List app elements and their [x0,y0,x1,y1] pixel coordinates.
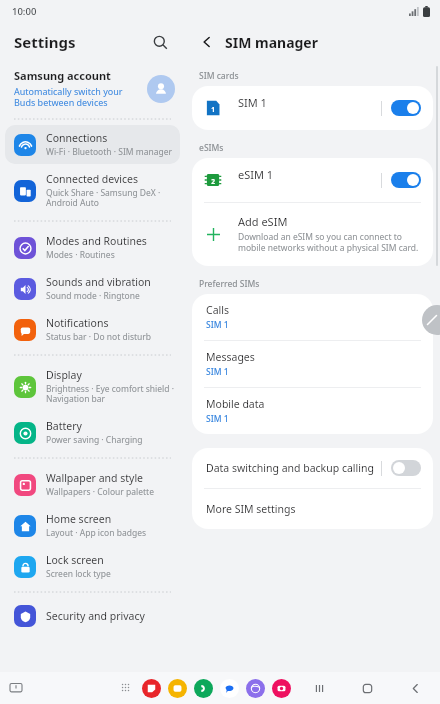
button[interactable]: Mobile data [192,388,433,434]
button[interactable]: Display [5,362,180,411]
button[interactable]: Notifications [5,310,180,349]
button[interactable]: Add eSIM [192,203,433,266]
staticText: Notifications [46,316,109,330]
button[interactable]: Search [147,29,173,55]
staticText: SIM manager [225,33,318,52]
staticText: 2 [211,177,215,186]
staticText: Modes · Routines [46,249,115,261]
staticText: Brightness · Eye comfort shield · Naviga… [46,383,174,405]
staticText: Mobile data [206,397,265,411]
button[interactable]: Modes and Routines [5,228,180,267]
staticText: Battery [46,419,82,433]
staticText: eSIMs [199,142,224,154]
staticText: SIM cards [199,70,239,82]
button[interactable]: Recents [308,677,330,699]
button[interactable]: Sounds and vibration [5,269,180,308]
button[interactable]: App 2 [194,679,213,698]
button[interactable]: Connections [5,125,180,164]
button[interactable]: Samsung account [0,62,185,115]
button[interactable]: Data switching and backup calling [192,448,433,488]
button[interactable]: Wallpaper and style [5,465,180,504]
button[interactable]: All apps [119,681,135,697]
staticText: Messages [206,350,255,364]
staticText: SIM 1 [238,95,381,110]
staticText: eSIM 1 [238,167,381,182]
staticText: Security and privacy [46,609,145,623]
button[interactable]: More SIM settings [192,489,433,529]
staticText: Preferred SIMs [199,278,260,290]
staticText: Samsung account [14,68,111,83]
staticText: Layout · App icon badges [46,527,147,539]
staticText: Sound mode · Ringtone [46,290,140,302]
button[interactable]: 2 [192,158,433,202]
button[interactable]: Edit [422,305,440,335]
staticText: Calls [206,303,229,317]
staticText: Settings [14,32,76,52]
button[interactable]: App 0 [142,679,161,698]
button[interactable]: App 4 [246,679,265,698]
button[interactable]: Home [356,677,378,699]
staticText: SIM 1 [206,319,229,331]
button[interactable]: Back [195,30,219,54]
staticText: 1 [211,105,215,114]
button[interactable] [391,460,421,476]
staticText: SIM 1 [206,366,229,378]
button[interactable]: Recent apps panel [6,678,26,698]
button[interactable]: Messages [192,341,433,387]
button[interactable]: Lock screen [5,547,180,586]
staticText: Modes and Routines [46,234,147,248]
staticText: Connections [46,131,108,145]
staticText: Quick Share · Samsung DeX · Android Auto [46,187,174,209]
staticText: Wi-Fi · Bluetooth · SIM manager [46,146,173,158]
button[interactable]: Calls [192,294,433,340]
staticText: Sounds and vibration [46,275,151,289]
staticText: Add eSIM [238,214,288,229]
staticText: Display [46,368,82,382]
staticText: Wallpaper and style [46,471,144,485]
button[interactable]: App 1 [168,679,187,698]
staticText: 10:00 [12,5,37,18]
staticText: Connected devices [46,172,139,186]
button[interactable]: App 3 [220,679,239,698]
button[interactable]: Back [404,677,426,699]
staticText: Download an eSIM so you can connect to m… [238,231,419,253]
staticText: Screen lock type [46,568,111,580]
staticText: Data switching and backup calling [206,461,381,475]
staticText: Automatically switch your Buds between d… [14,85,141,109]
button[interactable] [391,172,421,188]
staticText: More SIM settings [206,502,296,516]
staticText: Home screen [46,512,112,526]
button[interactable]: Security and privacy [5,599,180,633]
staticText: SIM 1 [206,413,229,425]
button[interactable]: Home screen [5,506,180,545]
staticText: Wallpapers · Colour palette [46,486,154,498]
button[interactable]: Connected devices [5,166,180,215]
button[interactable]: 1 [192,86,433,130]
button[interactable]: Battery [5,413,180,452]
staticText: Lock screen [46,553,104,567]
staticText: Power saving · Charging [46,434,143,446]
button[interactable] [391,100,421,116]
staticText: Status bar · Do not disturb [46,331,152,343]
button[interactable]: App 5 [272,679,291,698]
